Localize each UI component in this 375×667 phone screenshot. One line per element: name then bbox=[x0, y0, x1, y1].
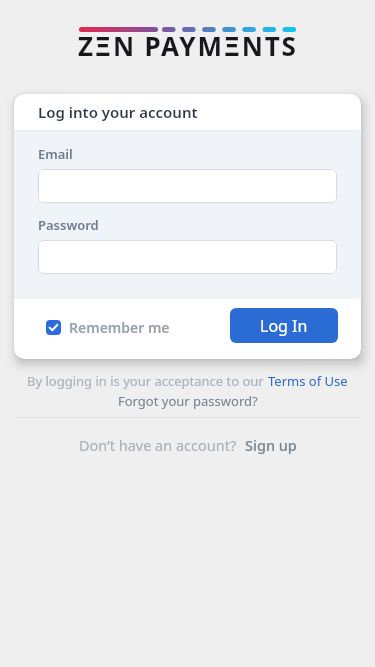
button[interactable] bbox=[38, 169, 337, 203]
button[interactable]: Forgot your password? bbox=[118, 392, 258, 410]
staticText: Don’t have an account? bbox=[79, 435, 237, 455]
staticText: ZΞN PAYMΞNTS bbox=[78, 28, 298, 63]
staticText: Log into your account bbox=[38, 102, 198, 122]
staticText: Remember me bbox=[69, 318, 170, 337]
button[interactable]: Remember me bbox=[46, 318, 170, 337]
staticText: By logging in is your acceptance to our bbox=[27, 372, 268, 390]
button[interactable]: Sign up bbox=[245, 435, 297, 455]
staticText: Email bbox=[38, 145, 73, 163]
button[interactable] bbox=[38, 240, 337, 274]
button[interactable]: Terms of Use bbox=[268, 372, 348, 390]
button[interactable]: Log In bbox=[230, 308, 338, 343]
staticText: Log In bbox=[260, 315, 308, 337]
staticText: Password bbox=[38, 216, 99, 234]
